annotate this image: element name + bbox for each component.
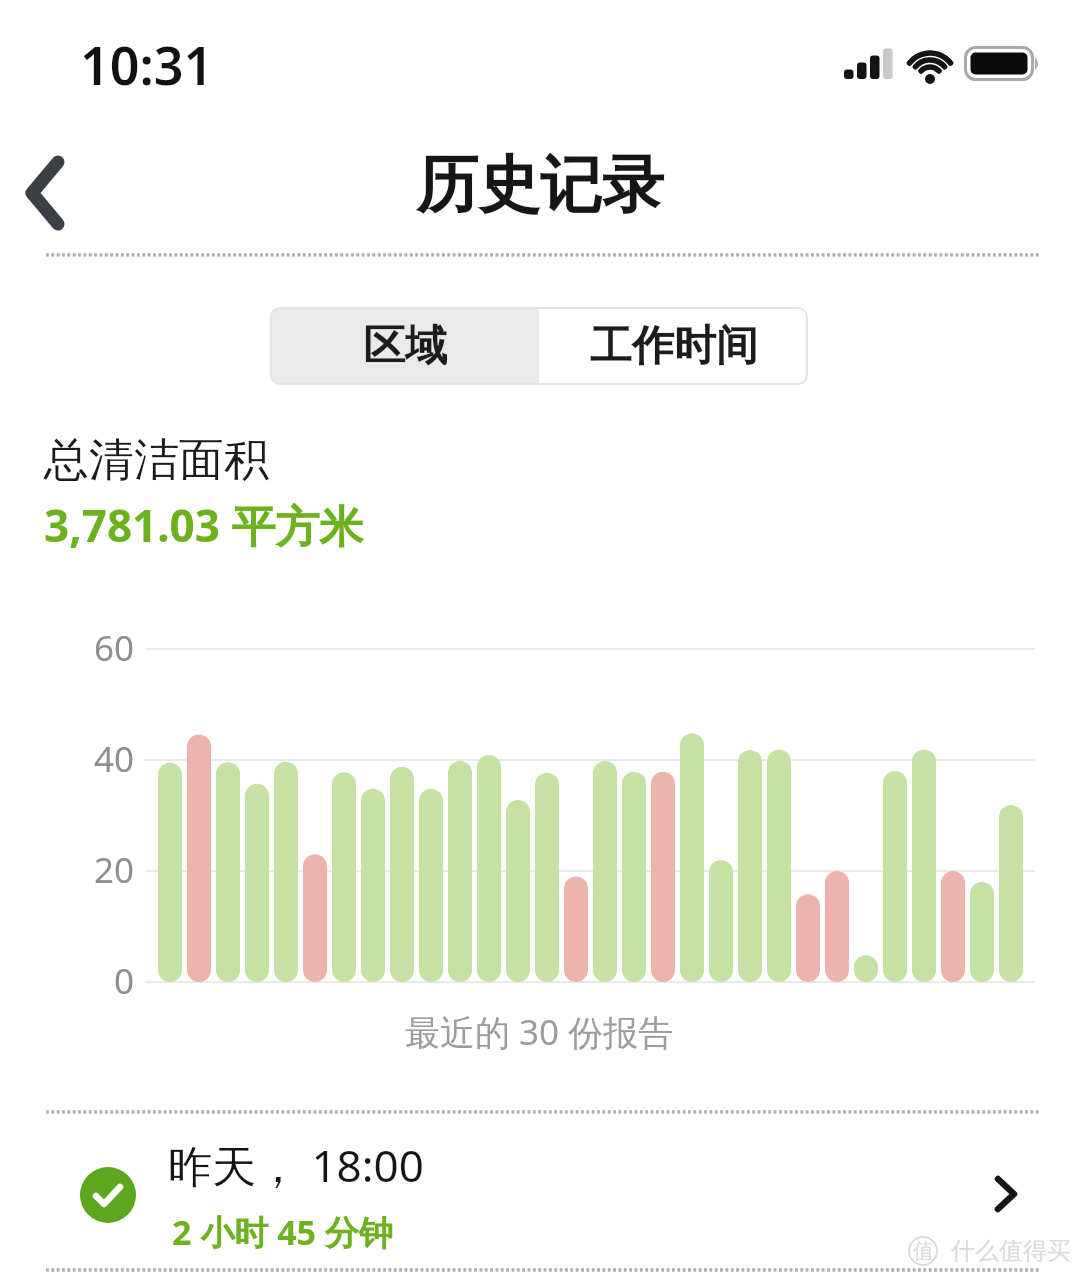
staticText: 昨天， 18:00 [168,1135,424,1195]
button[interactable]: 区域 [270,307,539,385]
button[interactable]: 昨天， 18:00 [0,1128,1079,1262]
button[interactable]: 工作时间 [539,307,808,385]
staticText: 最近的 30 份报告 [405,1008,674,1056]
staticText: 20 [94,846,135,894]
staticText: 10:31 [80,29,214,100]
staticText: 3,781.03 平方米 [44,495,364,555]
staticText: 什么值得买 [951,1236,1071,1266]
staticText: 40 [94,735,135,783]
staticText: 60 [94,624,135,672]
staticText: 0 [114,957,135,1005]
staticText: 总清洁面积 [44,432,269,489]
staticText: 区域 [363,320,447,373]
staticText: 值 [913,1238,934,1264]
staticText: 2 小时 45 分钟 [172,1209,393,1255]
staticText: 历史记录 [416,146,664,224]
staticText: 工作时间 [590,320,758,373]
button[interactable] [10,148,80,238]
